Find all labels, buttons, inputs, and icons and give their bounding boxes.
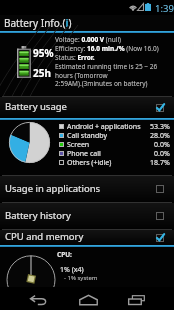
staticText: - 1% system (64, 274, 98, 282)
staticText: Battery usage (5, 100, 67, 113)
staticText: 28.0% (150, 131, 170, 140)
staticText: 0.0% (154, 140, 170, 149)
staticText: Others (+idle) (67, 158, 112, 167)
staticText: Battery history (5, 209, 71, 222)
staticText: 95% (33, 46, 54, 60)
button[interactable]: Battery usage (0, 96, 174, 120)
button[interactable]: Battery history (0, 202, 174, 229)
staticText: 1% (x4) (60, 265, 84, 275)
staticText: 0.0% (154, 149, 170, 158)
staticText: Call standby (67, 131, 107, 140)
button[interactable]: Usage in applications (0, 175, 174, 202)
staticText: 53.3% (150, 122, 170, 131)
staticText: Screen (67, 140, 90, 149)
staticText: 25h (33, 66, 51, 80)
staticText: Battery Info.(i) (4, 16, 72, 30)
button[interactable]: CPU and memory (0, 229, 174, 247)
staticText: Status: Error. (55, 53, 95, 62)
staticText: Voltage: 0.000 V (null) (55, 35, 122, 44)
staticText: Usage in applications (5, 182, 101, 195)
staticText: Efficiency: 16.0 min./% (Now 16.0) (55, 44, 159, 53)
staticText: Android + applications (67, 122, 141, 131)
staticText: CPU: (57, 250, 72, 259)
staticText: 18.7% (150, 158, 170, 167)
button[interactable]: Recents (116, 287, 157, 310)
button[interactable]: Home (67, 287, 110, 310)
staticText: Estimated running time is 25 ~ 26 hours … (55, 62, 158, 88)
staticText: CPU and memory (5, 230, 84, 243)
button[interactable]: Battery Info.(i) (4, 15, 174, 31)
button[interactable]: Back (18, 287, 59, 310)
staticText: Phone call (67, 149, 101, 158)
staticText: 1:39 (155, 2, 174, 15)
